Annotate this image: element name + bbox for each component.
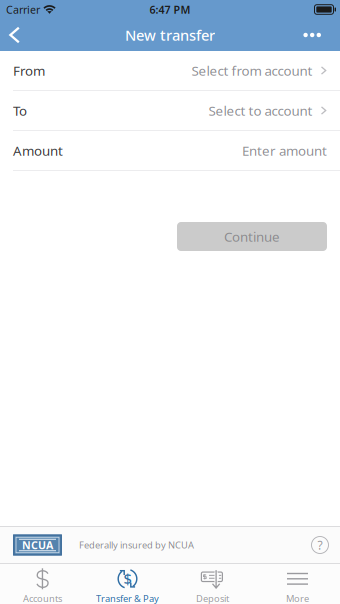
button[interactable]: More [255,564,340,604]
button[interactable]: More options [292,19,340,51]
button[interactable]: Help [308,533,332,557]
staticText: Accounts [23,592,62,604]
staticText: Amount [13,142,63,159]
button[interactable]: Continue [177,222,327,251]
staticText: To [13,102,27,119]
staticText: Select from account [191,62,312,79]
button[interactable]: Accounts [0,564,85,604]
staticText: From [13,62,45,79]
button[interactable]: From [0,51,340,91]
staticText: Transfer & Pay [96,592,159,604]
staticText: $ [123,569,131,589]
staticText: Select to account [208,102,312,119]
button[interactable]: Deposit [170,564,255,604]
staticText: Federally insured by NCUA [79,539,194,551]
staticText: 6:47 PM [149,2,190,17]
button[interactable]: $ [85,564,170,604]
staticText: Carrier [6,2,40,17]
staticText: Enter amount [242,142,327,159]
staticText: New transfer [125,25,215,45]
button[interactable]: To [0,91,340,131]
staticText: More [286,592,309,604]
staticText: Deposit [196,592,229,604]
button[interactable]: Back [0,19,44,51]
button[interactable]: Amount [0,131,340,171]
staticText: NCUA [22,538,53,552]
staticText: ? [317,537,322,553]
staticText: Continue [224,228,280,245]
